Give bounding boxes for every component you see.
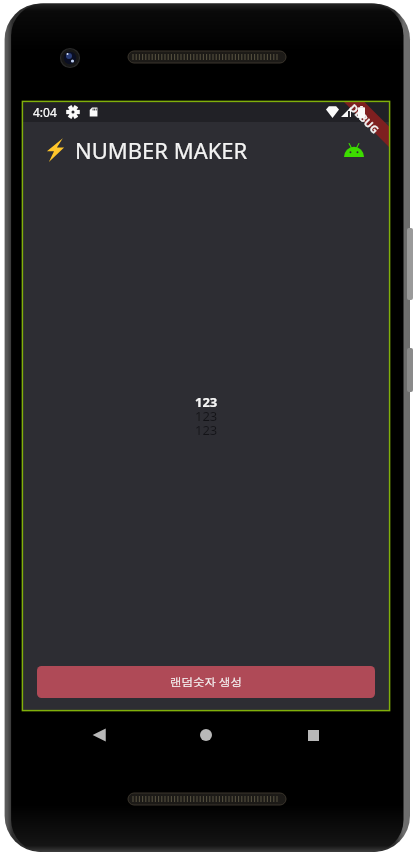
button[interactable]: Recent apps [297, 719, 329, 751]
staticText: 123 [195, 407, 218, 421]
button[interactable]: Home [190, 719, 222, 751]
button[interactable]: Android [343, 137, 364, 163]
button[interactable]: 랜덤숫자 생성 [37, 666, 375, 698]
staticText: DEBUG [346, 101, 383, 137]
staticText: 랜덤숫자 생성 [170, 674, 242, 690]
button[interactable]: Back [83, 719, 115, 751]
staticText: 4:04 [33, 104, 57, 120]
staticText: NUMBER MAKER [75, 135, 248, 165]
staticText: 123 [195, 421, 218, 435]
staticText: 123 [195, 393, 218, 407]
